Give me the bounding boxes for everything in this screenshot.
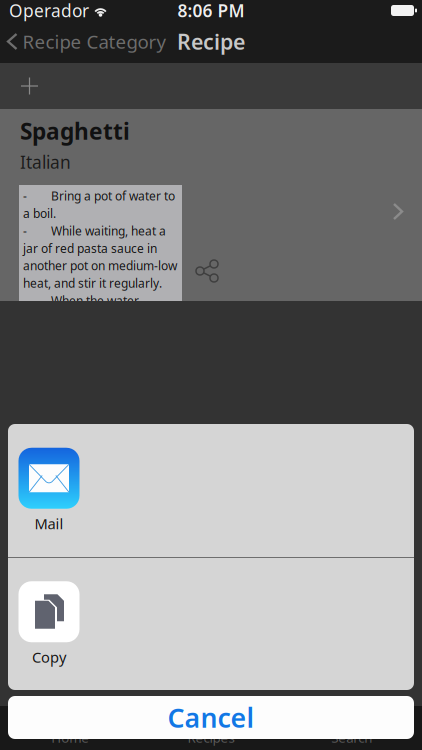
staticText: Recipes bbox=[187, 729, 234, 746]
staticText: 8:06 PM bbox=[177, 0, 244, 22]
staticText: Recipe bbox=[177, 27, 245, 56]
button[interactable]: Share bbox=[187, 251, 227, 291]
staticText: Recipe Category bbox=[22, 29, 166, 54]
staticText: Mail bbox=[34, 514, 63, 533]
staticText: Operador bbox=[9, 0, 89, 22]
staticText: Home bbox=[51, 729, 89, 746]
button[interactable]: Mail bbox=[8, 424, 414, 557]
button[interactable]: Search bbox=[281, 706, 422, 750]
staticText: Italian bbox=[20, 150, 71, 173]
staticText: - Bring a pot of water to a boil. - Whil… bbox=[23, 188, 177, 326]
button[interactable]: Home bbox=[0, 706, 141, 750]
button[interactable]: Copy bbox=[8, 558, 414, 690]
staticText: Copy bbox=[32, 647, 66, 667]
button[interactable]: Cancel bbox=[8, 696, 414, 739]
button[interactable]: Recipe Category bbox=[0, 20, 166, 63]
button[interactable]: Recipes bbox=[141, 706, 281, 750]
staticText: Search bbox=[331, 729, 372, 746]
staticText: Cancel bbox=[167, 700, 254, 735]
staticText: Spaghetti bbox=[20, 116, 130, 146]
button[interactable]: Add bbox=[10, 64, 49, 107]
